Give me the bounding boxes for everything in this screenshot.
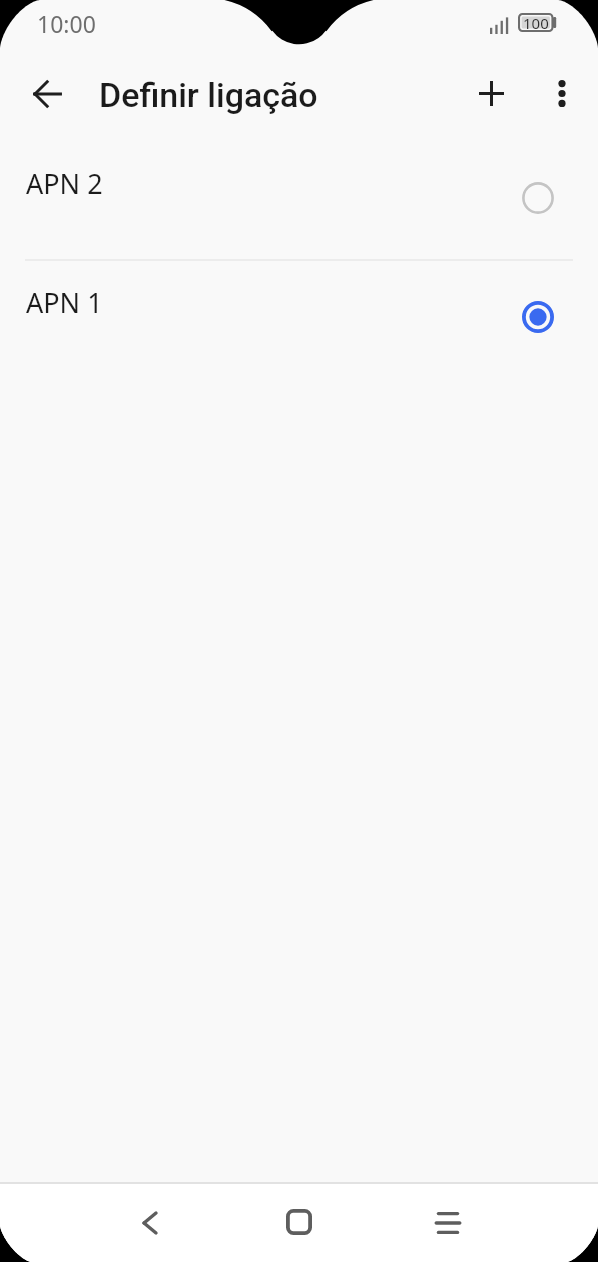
- button[interactable]: More options: [533, 65, 590, 122]
- button[interactable]: Recent apps: [418, 1193, 478, 1253]
- button[interactable]: APN 2: [0, 135, 598, 259]
- staticText: APN 2: [26, 165, 103, 202]
- button[interactable]: Back: [120, 1193, 180, 1253]
- staticText: APN 1: [26, 284, 103, 321]
- button[interactable]: Back: [18, 65, 75, 122]
- button[interactable]: Home: [269, 1192, 329, 1252]
- staticText: Definir ligação: [99, 75, 318, 115]
- staticText: 10:00: [37, 8, 96, 39]
- staticText: 100: [523, 13, 549, 32]
- button[interactable]: APN 1: [0, 261, 598, 385]
- button[interactable]: Add: [463, 65, 520, 122]
